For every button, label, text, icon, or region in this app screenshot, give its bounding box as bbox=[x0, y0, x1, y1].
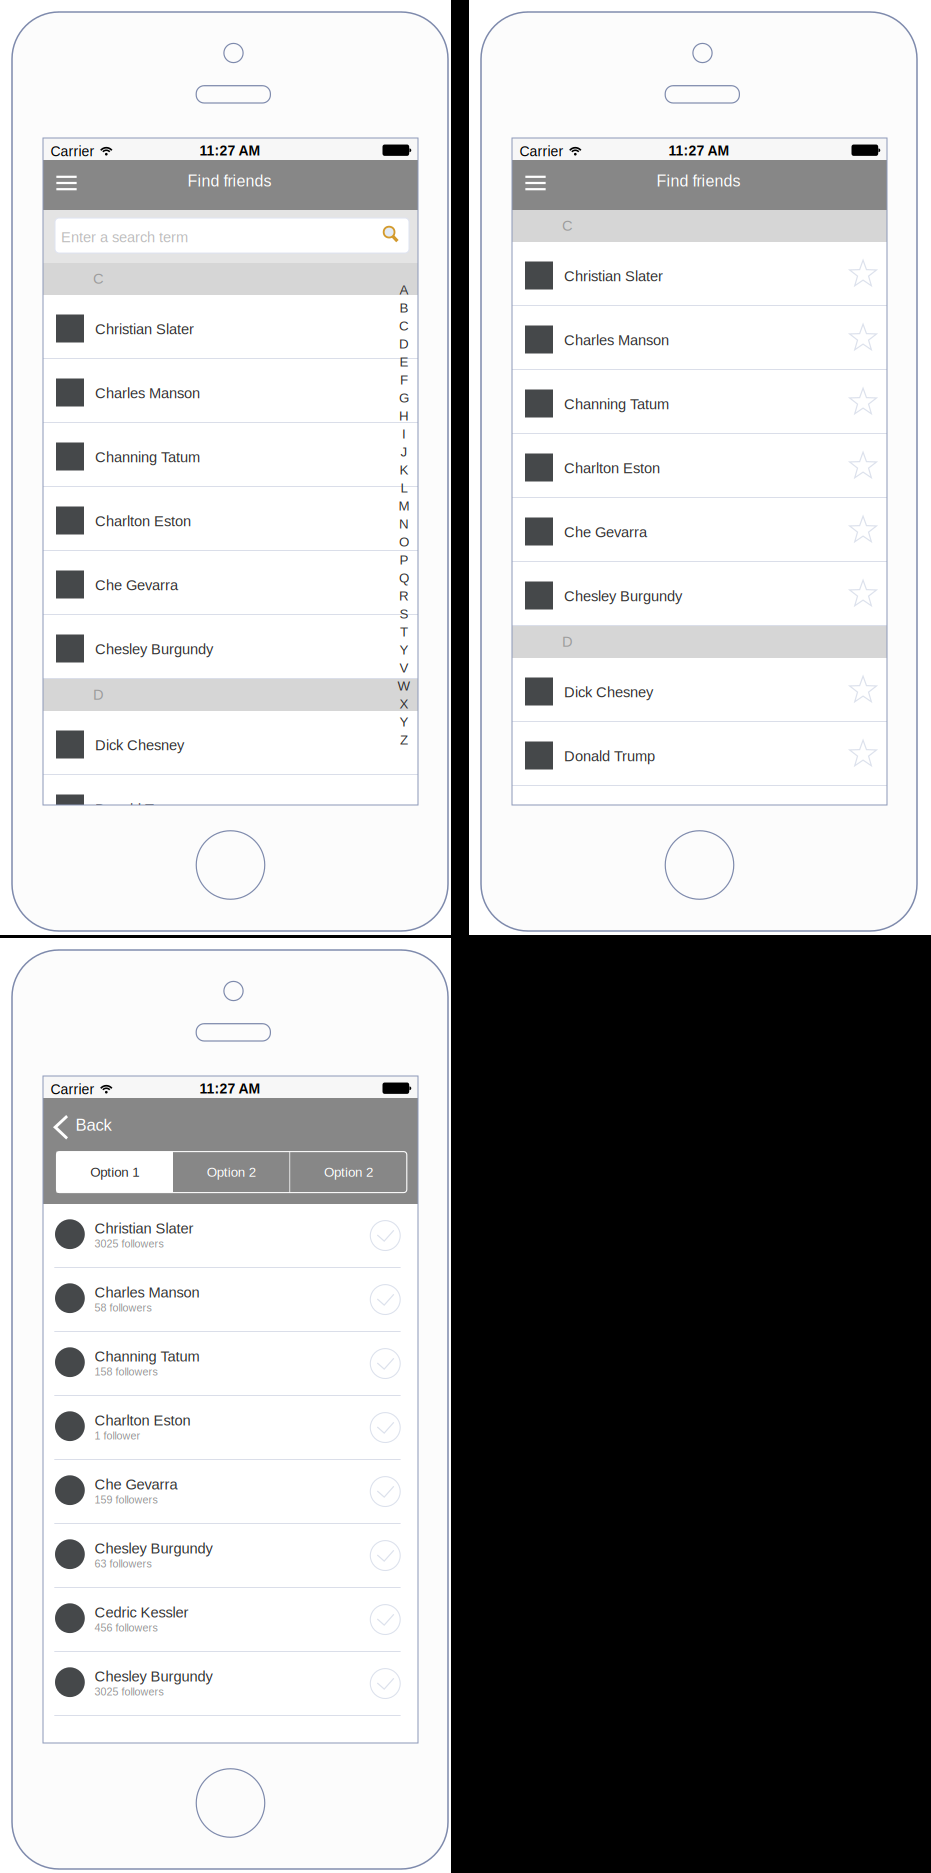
staticText: Y bbox=[399, 643, 408, 657]
button[interactable]: Charlton Eston bbox=[512, 434, 887, 497]
staticText: M bbox=[398, 499, 409, 513]
staticText: 11:27 AM bbox=[199, 1081, 260, 1096]
staticText: K bbox=[399, 463, 408, 477]
staticText: Charles Manson bbox=[94, 1284, 199, 1301]
staticText: Dick Chesney bbox=[564, 684, 653, 700]
staticText: Chesley Burgundy bbox=[95, 641, 213, 657]
staticText: Z bbox=[400, 733, 408, 747]
staticText: Find friends bbox=[656, 172, 740, 190]
staticText: Chesley Burgundy bbox=[94, 1540, 212, 1557]
staticText: Carrier bbox=[50, 1081, 94, 1097]
button[interactable]: Charles Manson bbox=[43, 359, 418, 422]
staticText: Option 2 bbox=[207, 1165, 256, 1180]
staticText: Che Gevarra bbox=[94, 1476, 177, 1493]
staticText: O bbox=[399, 535, 409, 549]
staticText: 11:27 AM bbox=[668, 143, 729, 158]
button[interactable]: Menu bbox=[512, 158, 558, 208]
button[interactable]: Menu bbox=[43, 158, 89, 208]
staticText: D bbox=[399, 337, 409, 351]
staticText: Chesley Burgundy bbox=[94, 1668, 212, 1685]
staticText: Donald Trump bbox=[564, 748, 655, 764]
staticText: 1 follower bbox=[94, 1430, 140, 1442]
staticText: C bbox=[562, 217, 573, 234]
button[interactable]: Option 1 bbox=[56, 1152, 173, 1193]
staticText: C bbox=[93, 270, 104, 287]
staticText: D bbox=[93, 686, 104, 703]
button[interactable]: Chesley Burgundy bbox=[43, 1652, 418, 1715]
staticText: Che Gevarra bbox=[564, 524, 647, 540]
button[interactable]: Charles Manson bbox=[512, 306, 887, 369]
staticText: 3025 followers bbox=[94, 1686, 163, 1698]
staticText: D bbox=[562, 633, 573, 650]
staticText: Christian Slater bbox=[564, 268, 663, 284]
staticText: E bbox=[399, 355, 408, 369]
staticText: H bbox=[399, 409, 409, 423]
staticText: Carrier bbox=[50, 143, 94, 159]
button[interactable]: Back bbox=[43, 1098, 158, 1151]
staticText: Chesley Burgundy bbox=[564, 588, 682, 604]
button[interactable]: Christian Slater bbox=[512, 242, 887, 305]
button[interactable]: Cedric Kessler bbox=[43, 1588, 418, 1651]
button[interactable]: Christian Slater bbox=[43, 1204, 418, 1267]
staticText: S bbox=[399, 607, 408, 621]
button[interactable]: Chesley Burgundy bbox=[43, 615, 418, 678]
button[interactable]: Che Gevarra bbox=[43, 551, 418, 614]
button[interactable]: Option 2 bbox=[290, 1152, 407, 1193]
staticText: W bbox=[397, 679, 410, 693]
button[interactable]: Charlton Eston bbox=[43, 1396, 418, 1459]
staticText: Charlton Eston bbox=[564, 460, 660, 476]
staticText: Charlton Eston bbox=[94, 1412, 190, 1429]
staticText: T bbox=[400, 625, 408, 639]
staticText: Q bbox=[399, 571, 409, 585]
button[interactable]: Enter a search term bbox=[55, 218, 409, 253]
staticText: Christian Slater bbox=[94, 1220, 193, 1237]
staticText: G bbox=[399, 391, 409, 405]
staticText: Find friends bbox=[187, 172, 271, 190]
staticText: Channing Tatum bbox=[564, 396, 669, 412]
staticText: P bbox=[399, 553, 408, 567]
staticText: C bbox=[399, 319, 409, 333]
button[interactable]: Charles Manson bbox=[43, 1268, 418, 1331]
staticText: Channing Tatum bbox=[94, 1348, 199, 1365]
button[interactable]: Dick Chesney bbox=[43, 711, 418, 774]
button[interactable]: Charlton Eston bbox=[43, 487, 418, 550]
staticText: X bbox=[399, 697, 408, 711]
staticText: I bbox=[402, 427, 406, 441]
button[interactable]: Chesley Burgundy bbox=[43, 1524, 418, 1587]
staticText: Channing Tatum bbox=[95, 449, 200, 465]
staticText: 3025 followers bbox=[94, 1238, 163, 1250]
button[interactable]: Donald Trump bbox=[512, 722, 887, 785]
staticText: Dick Chesney bbox=[95, 737, 184, 753]
button[interactable]: Che Gevarra bbox=[512, 498, 887, 561]
staticText: N bbox=[399, 517, 409, 531]
staticText: 63 followers bbox=[94, 1558, 151, 1570]
staticText: 58 followers bbox=[94, 1302, 151, 1314]
staticText: L bbox=[400, 481, 407, 495]
button[interactable]: Che Gevarra bbox=[43, 1460, 418, 1523]
button[interactable]: Christian Slater bbox=[43, 295, 418, 358]
staticText: 456 followers bbox=[94, 1622, 157, 1634]
button[interactable]: Channing Tatum bbox=[43, 423, 418, 486]
staticText: Christian Slater bbox=[95, 321, 194, 337]
staticText: Back bbox=[75, 1116, 111, 1134]
staticText: 158 followers bbox=[94, 1366, 157, 1378]
staticText: R bbox=[399, 589, 409, 603]
button[interactable]: Chesley Burgundy bbox=[512, 562, 887, 625]
staticText: Charlton Eston bbox=[95, 513, 191, 529]
staticText: 11:27 AM bbox=[199, 143, 260, 158]
staticText: A bbox=[399, 283, 408, 297]
staticText: Cedric Kessler bbox=[94, 1604, 188, 1621]
button[interactable]: Dick Chesney bbox=[512, 658, 887, 721]
staticText: Option 1 bbox=[90, 1165, 139, 1180]
button[interactable]: Donald Trump bbox=[43, 775, 418, 838]
staticText: Charles Manson bbox=[564, 332, 669, 348]
staticText: 159 followers bbox=[94, 1494, 157, 1506]
staticText: Carrier bbox=[519, 143, 563, 159]
staticText: B bbox=[399, 301, 408, 315]
staticText: Donald Trump bbox=[95, 801, 186, 817]
staticText: J bbox=[400, 445, 407, 459]
staticText: Enter a search term bbox=[61, 229, 188, 245]
button[interactable]: Channing Tatum bbox=[43, 1332, 418, 1395]
button[interactable]: Channing Tatum bbox=[512, 370, 887, 433]
button[interactable]: Option 2 bbox=[173, 1152, 289, 1193]
